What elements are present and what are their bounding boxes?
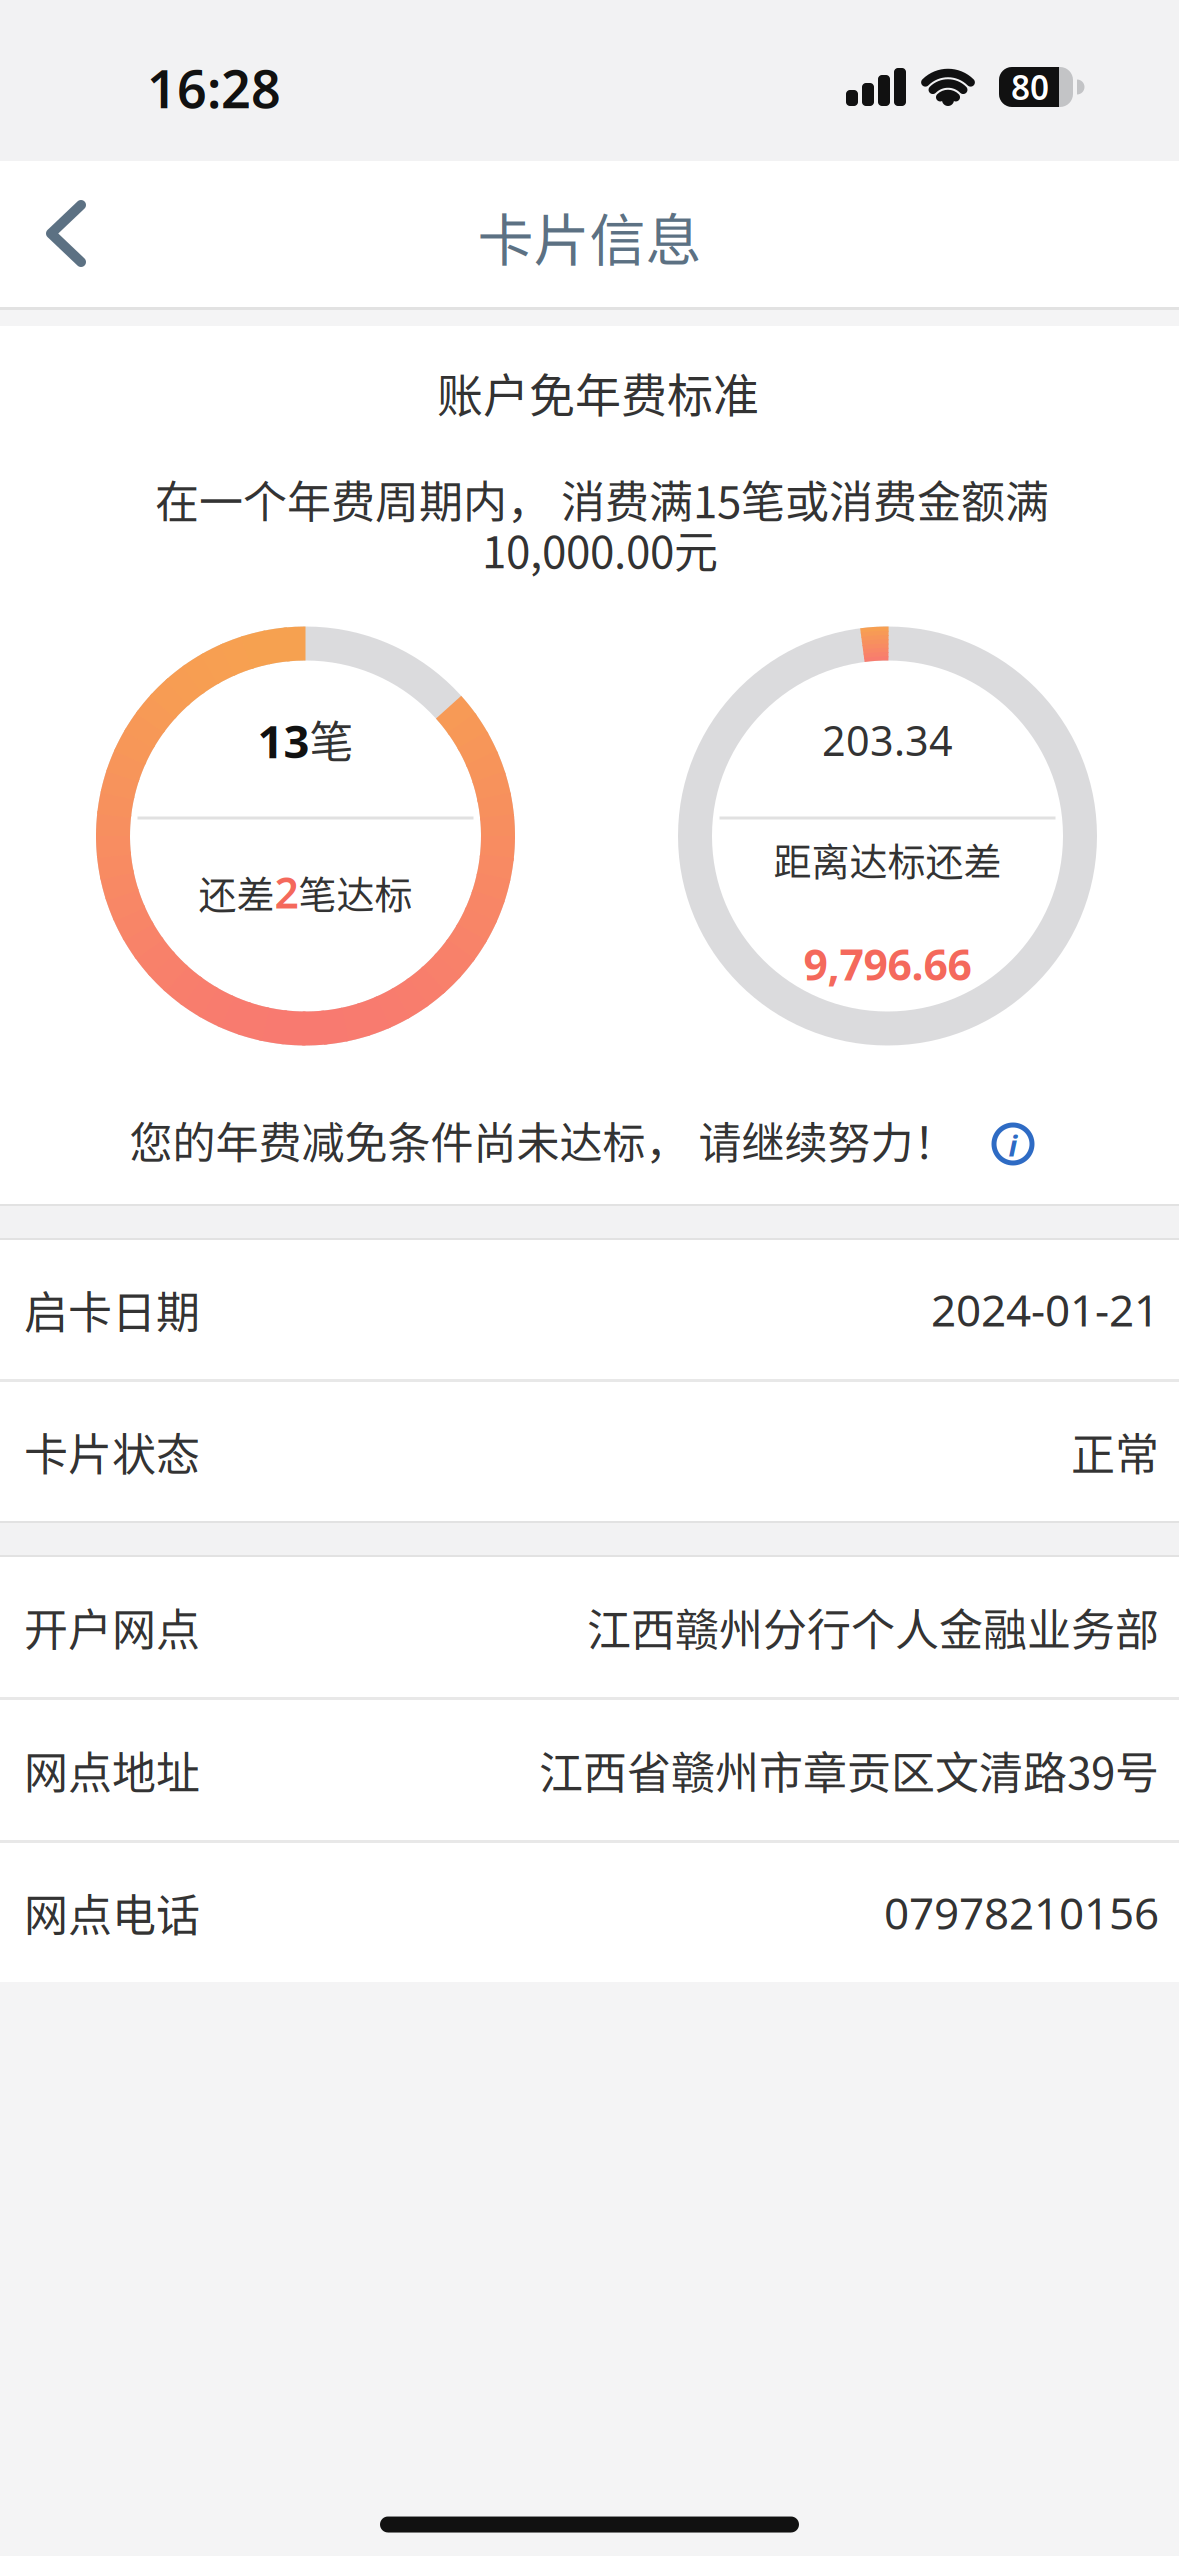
staticText: 网点电话: [24, 1881, 200, 1944]
staticText: 2: [274, 864, 298, 920]
staticText: 江西赣州分行个人金融业务部: [587, 1595, 1159, 1659]
staticText: 9,796.66: [803, 936, 971, 992]
staticText: 13: [257, 710, 309, 771]
staticText: 开户网点: [24, 1595, 200, 1659]
staticText: 江西省赣州市章贡区文清路39号: [539, 1738, 1159, 1802]
staticText: 203.34: [822, 713, 953, 767]
staticText: 07978210156: [884, 1883, 1159, 1942]
staticText: 16:28: [147, 53, 281, 123]
staticText: i: [1008, 1125, 1017, 1164]
staticText: 卡片信息: [477, 195, 701, 277]
staticText: 账户免年费标准: [437, 359, 759, 425]
staticText: 正常: [1071, 1420, 1159, 1483]
staticText: 卡片状态: [24, 1420, 200, 1483]
staticText: 您的年费减免条件尚未达标， 请继续努力！: [129, 1109, 956, 1171]
staticText: 笔: [309, 707, 353, 771]
button[interactable]: Info: [981, 1112, 1045, 1176]
staticText: 启卡日期: [24, 1278, 200, 1341]
staticText: 80: [1011, 65, 1049, 109]
staticText: 在一个年费周期内， 消费满15笔或消费金额满: [155, 467, 1049, 531]
button[interactable]: Back: [0, 161, 121, 306]
staticText: 10,000.00元: [482, 517, 718, 581]
staticText: 距离达标还差: [773, 831, 1001, 886]
staticText: 笔达标: [298, 864, 412, 919]
staticText: 网点地址: [24, 1738, 200, 1802]
staticText: 还差: [198, 864, 274, 919]
staticText: 2024-01-21: [931, 1280, 1159, 1339]
